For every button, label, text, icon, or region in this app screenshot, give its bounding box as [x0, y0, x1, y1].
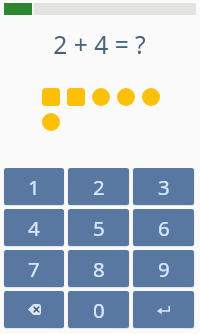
staticText: 4 [28, 214, 40, 242]
staticText: 2 [93, 173, 105, 201]
button[interactable]: 9 [133, 250, 194, 287]
button[interactable]: 3 [133, 168, 194, 205]
button[interactable]: 6 [133, 209, 194, 246]
staticText: 5 [93, 214, 105, 242]
button[interactable]: 1 [4, 168, 64, 205]
button[interactable]: Enter [133, 291, 194, 328]
staticText: 8 [93, 255, 105, 283]
button[interactable]: 0 [68, 291, 129, 328]
staticText: 9 [158, 255, 170, 283]
staticText: 6 [158, 214, 170, 242]
button[interactable]: 5 [68, 209, 129, 246]
staticText: 0 [93, 296, 105, 324]
staticText: 2 + 4 = ? [53, 28, 146, 62]
staticText: 7 [28, 255, 40, 283]
staticText: 1 [28, 173, 40, 201]
button[interactable]: 2 [68, 168, 129, 205]
button[interactable]: Backspace [4, 291, 64, 328]
staticText: 3 [158, 173, 170, 201]
button[interactable]: 4 [4, 209, 64, 246]
button[interactable]: 7 [4, 250, 64, 287]
button[interactable]: 8 [68, 250, 129, 287]
